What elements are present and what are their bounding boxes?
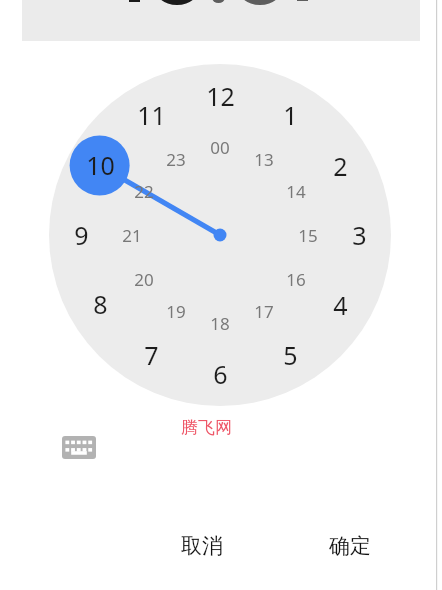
- staticText: 10: [86, 148, 115, 182]
- staticText: 15: [298, 224, 318, 247]
- staticText: 23: [166, 148, 186, 171]
- staticText: 22: [134, 180, 154, 203]
- staticText: 14: [286, 180, 306, 203]
- staticText: 1: [283, 98, 298, 132]
- staticText: 21: [122, 224, 142, 247]
- staticText: 11: [137, 98, 166, 132]
- button[interactable]: 确定: [310, 524, 390, 568]
- button[interactable]: Switch to text input: [59, 433, 99, 462]
- staticText: 8: [93, 287, 108, 321]
- staticText: 腾飞网: [181, 417, 232, 438]
- staticText: 6: [213, 357, 228, 391]
- staticText: 4: [333, 288, 348, 322]
- staticText: 2: [333, 149, 348, 183]
- staticText: 3: [352, 218, 367, 252]
- staticText: 20: [134, 268, 154, 291]
- staticText: 12: [206, 79, 235, 113]
- staticText: 17: [254, 300, 274, 323]
- staticText: 13: [254, 148, 274, 171]
- button[interactable]: 取消: [162, 524, 242, 568]
- staticText: 18: [210, 312, 230, 335]
- staticText: 00: [210, 136, 230, 159]
- staticText: 16: [286, 268, 306, 291]
- staticText: 19: [166, 300, 186, 323]
- staticText: 9: [74, 218, 89, 252]
- button[interactable]: Clock face, pick hour: [0, 0, 442, 590]
- staticText: 5: [283, 338, 298, 372]
- staticText: 取消: [181, 533, 223, 559]
- staticText: 确定: [329, 533, 371, 559]
- staticText: 7: [144, 338, 159, 372]
